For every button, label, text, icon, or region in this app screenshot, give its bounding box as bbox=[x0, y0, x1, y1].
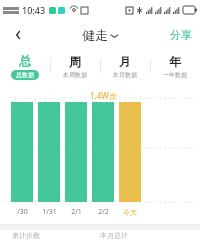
staticText: 本周数据 bbox=[63, 71, 87, 79]
staticText: 年 bbox=[169, 54, 181, 69]
staticText: 2/2 bbox=[98, 207, 109, 217]
button[interactable]: 周 bbox=[50, 50, 100, 82]
button[interactable]: 月 bbox=[100, 50, 150, 82]
button[interactable]: 健走 bbox=[82, 27, 118, 43]
button[interactable]: 总 bbox=[0, 50, 50, 82]
staticText: 月 bbox=[119, 54, 131, 69]
button[interactable]: 年 bbox=[150, 50, 200, 82]
staticText: 今天 bbox=[123, 208, 137, 217]
staticText: 1.4W步 bbox=[90, 90, 117, 101]
staticText: 本月数据 bbox=[113, 71, 137, 79]
staticText: 10:43 bbox=[22, 4, 46, 16]
staticText: 总数据 bbox=[16, 71, 34, 79]
button[interactable]: Back bbox=[6, 23, 30, 47]
staticText: 本月总计 bbox=[100, 231, 128, 240]
staticText: 1/31 bbox=[42, 207, 57, 217]
staticText: 健走 bbox=[82, 27, 108, 43]
button[interactable]: 分享 bbox=[170, 28, 192, 42]
staticText: 总 bbox=[19, 53, 31, 68]
staticText: 一年数据 bbox=[163, 71, 187, 79]
staticText: /30 bbox=[17, 207, 28, 217]
staticText: 累计步数 bbox=[12, 231, 40, 240]
staticText: 2/1 bbox=[71, 207, 82, 217]
staticText: 周 bbox=[69, 54, 81, 69]
staticText: 分享 bbox=[170, 28, 192, 42]
